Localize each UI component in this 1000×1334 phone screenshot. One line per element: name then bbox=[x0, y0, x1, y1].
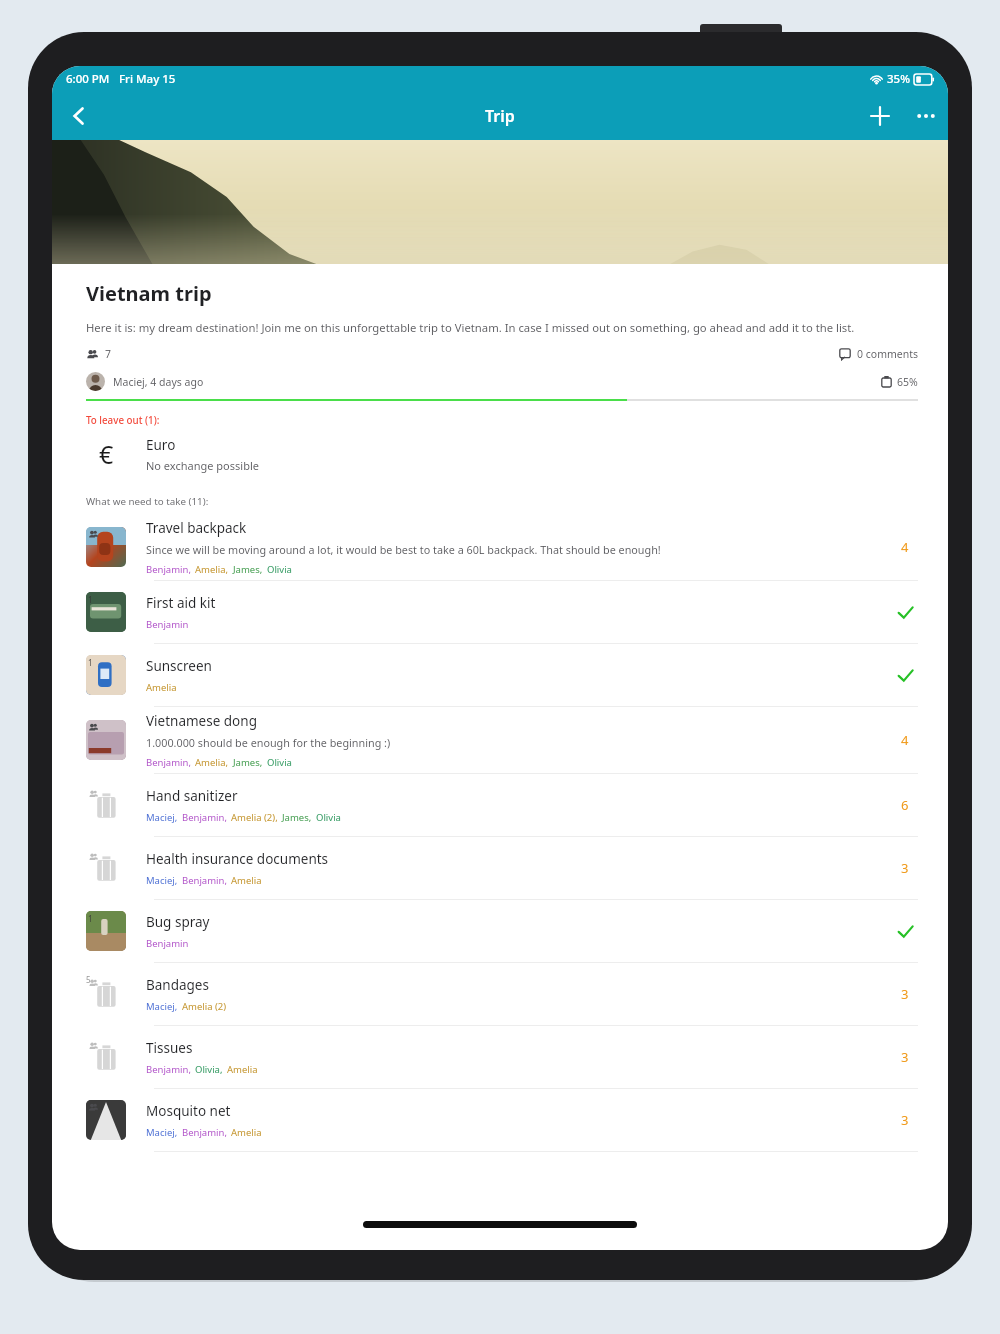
staticText: 4 bbox=[901, 538, 909, 556]
staticText: € bbox=[99, 437, 114, 471]
staticText: Amelia bbox=[231, 874, 262, 887]
staticText: Maciej, bbox=[146, 1000, 178, 1013]
staticText: Olivia, bbox=[195, 1063, 223, 1076]
staticText: 65% bbox=[897, 375, 918, 389]
staticText: Trip bbox=[485, 105, 515, 127]
staticText: 4 bbox=[901, 731, 909, 749]
staticText: Amelia, bbox=[195, 756, 229, 769]
staticText: 3 bbox=[901, 1111, 909, 1129]
staticText: 1 bbox=[88, 913, 93, 924]
staticText: Maciej, bbox=[146, 811, 178, 824]
staticText: Benjamin, bbox=[182, 874, 227, 887]
button[interactable]: Tissues bbox=[52, 1026, 948, 1089]
staticText: Benjamin, bbox=[146, 563, 191, 576]
staticText: Vietnamese dong bbox=[146, 712, 257, 730]
staticText: 7 bbox=[105, 347, 112, 361]
button[interactable]: 1 bbox=[52, 900, 948, 963]
button[interactable]: Vietnamese dong bbox=[52, 707, 948, 774]
staticText: 1.000.000 should be enough for the begin… bbox=[146, 735, 391, 750]
staticText: 3 bbox=[901, 859, 909, 877]
button[interactable]: € bbox=[52, 427, 948, 481]
staticText: Mosquito net bbox=[146, 1102, 231, 1120]
staticText: To leave out (1): bbox=[86, 414, 160, 427]
staticText: James, bbox=[282, 811, 312, 824]
staticText: 0 comments bbox=[857, 347, 918, 361]
button[interactable]: Back bbox=[52, 92, 106, 140]
staticText: Hand sanitizer bbox=[146, 787, 238, 805]
staticText: Benjamin, bbox=[182, 1126, 227, 1139]
staticText: Euro bbox=[146, 436, 176, 454]
button[interactable]: More options bbox=[904, 92, 948, 140]
staticText: 3 bbox=[901, 1048, 909, 1066]
staticText: Amelia bbox=[146, 681, 177, 694]
staticText: Amelia, bbox=[195, 563, 229, 576]
staticText: Sunscreen bbox=[146, 657, 212, 675]
staticText: Olivia bbox=[316, 811, 341, 824]
staticText: 35% bbox=[887, 71, 910, 87]
staticText: Here it is: my dream destination! Join m… bbox=[86, 320, 855, 335]
staticText: Vietnam trip bbox=[86, 280, 212, 307]
staticText: Bug spray bbox=[146, 913, 210, 931]
staticText: Benjamin bbox=[146, 937, 189, 950]
staticText: Fri May 15 bbox=[119, 71, 176, 87]
staticText: Amelia (2) bbox=[182, 1000, 227, 1013]
staticText: Benjamin, bbox=[146, 1063, 191, 1076]
button[interactable]: Travel backpack bbox=[52, 514, 948, 581]
button[interactable]: 5 bbox=[52, 963, 948, 1026]
staticText: 3 bbox=[901, 985, 909, 1003]
staticText: Olivia bbox=[267, 563, 292, 576]
button[interactable]: Health insurance documents bbox=[52, 837, 948, 900]
button[interactable]: Mosquito net bbox=[52, 1089, 948, 1152]
staticText: 1 bbox=[88, 657, 93, 668]
staticText: Bandages bbox=[146, 976, 209, 994]
staticText: Since we will be moving around a lot, it… bbox=[146, 542, 661, 557]
staticText: James, bbox=[233, 563, 263, 576]
staticText: Amelia (2), bbox=[231, 811, 278, 824]
staticText: 6 bbox=[901, 796, 909, 814]
staticText: First aid kit bbox=[146, 594, 216, 612]
staticText: James, bbox=[233, 756, 263, 769]
staticText: Benjamin, bbox=[146, 756, 191, 769]
staticText: Travel backpack bbox=[146, 519, 247, 537]
staticText: Amelia bbox=[227, 1063, 258, 1076]
staticText: Maciej, bbox=[146, 1126, 178, 1139]
staticText: No exchange possible bbox=[146, 458, 259, 473]
staticText: What we need to take (11): bbox=[86, 495, 209, 508]
staticText: 5 bbox=[86, 974, 91, 985]
staticText: Health insurance documents bbox=[146, 850, 329, 868]
staticText: Benjamin, bbox=[182, 811, 227, 824]
staticText: Maciej, 4 days ago bbox=[113, 375, 204, 389]
staticText: Olivia bbox=[267, 756, 292, 769]
staticText: 1 bbox=[88, 594, 93, 605]
staticText: Amelia bbox=[231, 1126, 262, 1139]
staticText: 6:00 PM bbox=[66, 71, 110, 87]
staticText: Maciej, bbox=[146, 874, 178, 887]
button[interactable]: 1 bbox=[52, 581, 948, 644]
staticText: Tissues bbox=[146, 1039, 193, 1057]
button[interactable]: 1 bbox=[52, 644, 948, 707]
staticText: Benjamin bbox=[146, 618, 189, 631]
button[interactable]: Hand sanitizer bbox=[52, 774, 948, 837]
button[interactable]: Add bbox=[856, 92, 904, 140]
